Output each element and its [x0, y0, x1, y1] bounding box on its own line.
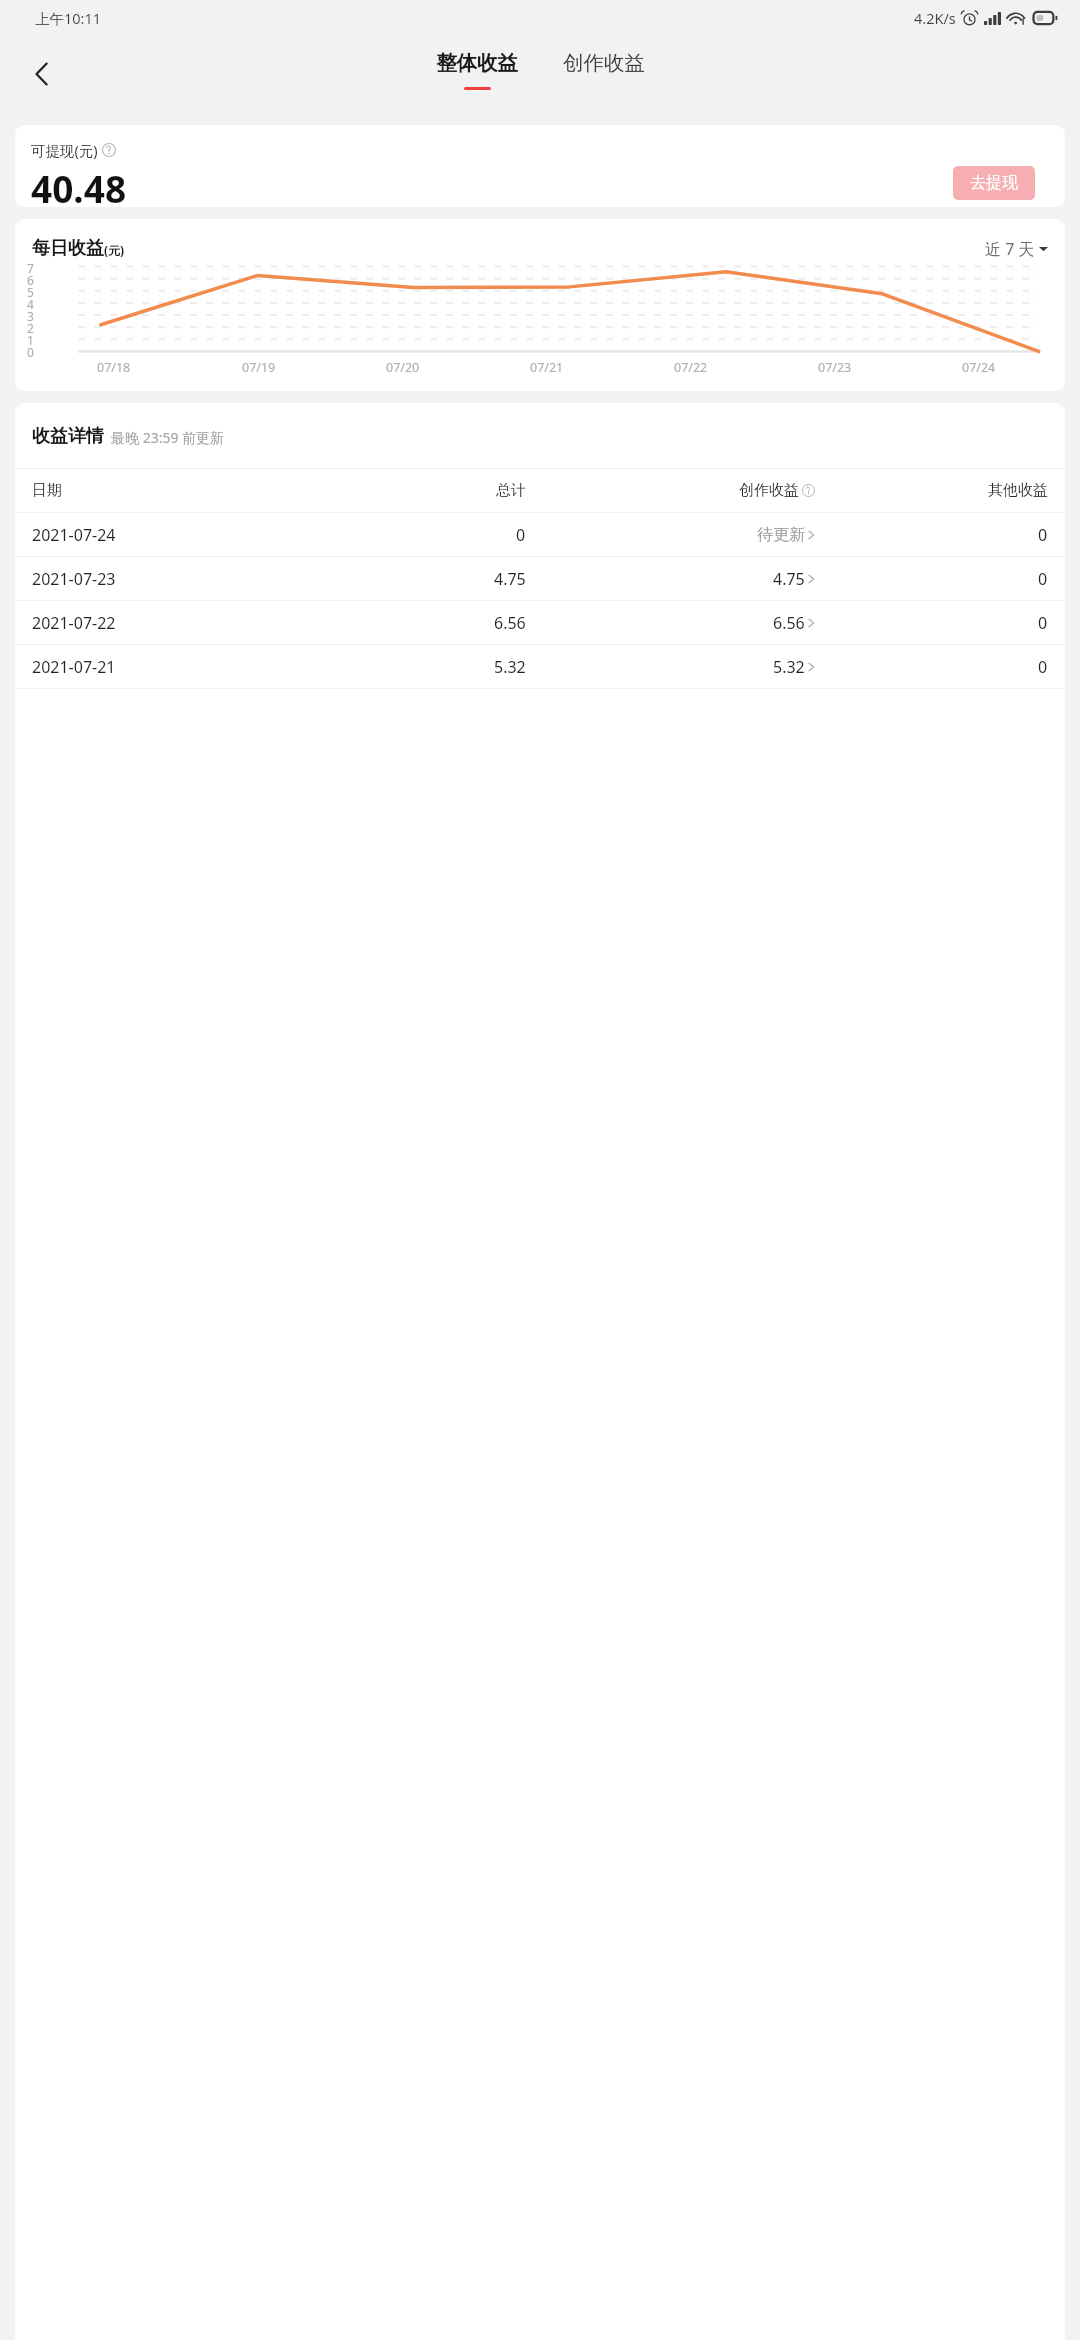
staticText: 上午10:11 — [35, 8, 102, 28]
staticText: 1 — [27, 332, 34, 348]
staticText: 0 — [27, 344, 34, 360]
staticText: 5 — [27, 284, 34, 300]
staticText: 2021-07-23 — [32, 568, 116, 590]
staticText: 07/21 — [530, 359, 564, 376]
staticText: 2021-07-21 — [32, 656, 116, 678]
staticText: 去提现 — [970, 173, 1018, 193]
staticText: 07/20 — [386, 359, 420, 376]
staticText: 2021-07-22 — [32, 612, 116, 634]
staticText: 可提现(元) — [31, 140, 98, 160]
staticText: 创作收益 — [739, 481, 799, 500]
staticText: 07/24 — [962, 359, 996, 376]
staticText: 6 — [27, 272, 34, 288]
button[interactable]: 去提现 — [953, 166, 1035, 200]
staticText: 0 — [516, 524, 526, 546]
staticText: 日期 — [32, 481, 62, 500]
button[interactable]: Back — [14, 46, 70, 102]
staticText: 6.56 — [494, 612, 526, 634]
button[interactable]: 2021-07-22 — [15, 601, 1065, 644]
button[interactable]: 2021-07-21 — [15, 645, 1065, 688]
staticText: 6.56 — [773, 612, 805, 634]
staticText: 整体收益 — [436, 50, 518, 76]
staticText: 最晚 23:59 前更新 — [111, 428, 225, 447]
staticText: 7 — [27, 260, 34, 276]
staticText: 2 — [27, 320, 34, 336]
button[interactable]: 2021-07-24 — [15, 513, 1065, 556]
staticText: 0 — [1038, 568, 1048, 590]
staticText: 07/23 — [818, 359, 852, 376]
staticText: 4.75 — [773, 568, 805, 590]
staticText: 07/22 — [674, 359, 708, 376]
button[interactable]: 提现说明 — [102, 143, 116, 157]
staticText: 4.75 — [494, 568, 526, 590]
staticText: 40.48 — [31, 163, 127, 207]
staticText: (元) — [104, 242, 125, 258]
button[interactable]: 创作收益说明 — [802, 484, 815, 497]
staticText: 3 — [27, 308, 34, 324]
staticText: 总计 — [496, 481, 526, 500]
staticText: 5.32 — [494, 656, 526, 678]
button[interactable]: 2021-07-23 — [15, 557, 1065, 600]
staticText: 创作收益 — [563, 50, 645, 76]
staticText: 4 — [27, 296, 34, 312]
staticText: 07/18 — [97, 359, 131, 376]
staticText: 2021-07-24 — [32, 524, 116, 546]
staticText: 待更新 — [757, 525, 805, 545]
staticText: 5.32 — [773, 656, 805, 678]
staticText: 4.2K/s — [914, 8, 956, 28]
staticText: 每日收益 — [32, 237, 104, 260]
staticText: 0 — [1038, 656, 1048, 678]
staticText: 07/19 — [242, 359, 276, 376]
button[interactable]: 近 7 天 — [985, 238, 1048, 260]
staticText: 0 — [1038, 612, 1048, 634]
button[interactable]: 创作收益 — [553, 36, 655, 87]
staticText: 其他收益 — [988, 481, 1048, 500]
staticText: 0 — [1038, 524, 1048, 546]
staticText: 收益详情 — [32, 425, 104, 448]
staticText: 近 7 天 — [985, 238, 1035, 260]
button[interactable]: 整体收益 — [426, 36, 528, 90]
